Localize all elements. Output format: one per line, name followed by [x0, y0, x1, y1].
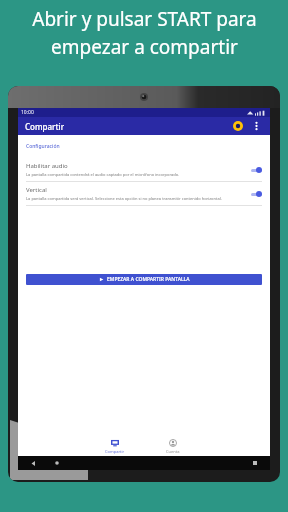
- staticText: Compartir: [25, 121, 65, 132]
- button[interactable]: Cuenta: [156, 437, 190, 456]
- staticText: 10:00: [21, 109, 34, 116]
- button[interactable]: EMPEZAR A COMPARTIR PANTALLA: [26, 274, 262, 285]
- button[interactable]: Ayuda: [231, 119, 245, 133]
- staticText: Vertical: [26, 186, 47, 194]
- staticText: Cuenta: [166, 449, 180, 454]
- button[interactable]: Habilitar audio: [18, 158, 270, 181]
- staticText: Abrir y pulsar START para: [32, 6, 257, 32]
- staticText: Configuración: [26, 143, 60, 150]
- staticText: La pantalla compartida será vertical. Se…: [26, 196, 222, 201]
- staticText: empezar a compartir: [51, 34, 238, 60]
- button[interactable]: Inicio: [52, 458, 62, 468]
- staticText: Compartir: [105, 449, 125, 454]
- button[interactable]: Habilitar audio: [248, 165, 262, 175]
- staticText: La pantalla compartida contendrá el audi…: [26, 172, 180, 177]
- button[interactable]: Recientes: [250, 458, 260, 468]
- staticText: EMPEZAR A COMPARTIR PANTALLA: [107, 276, 190, 283]
- button[interactable]: Atrás: [28, 458, 38, 468]
- button[interactable]: Compartir: [98, 437, 132, 456]
- button[interactable]: Vertical: [248, 189, 262, 199]
- staticText: Habilitar audio: [26, 162, 68, 170]
- button[interactable]: Más opciones: [249, 119, 263, 133]
- button[interactable]: Vertical: [18, 182, 270, 205]
